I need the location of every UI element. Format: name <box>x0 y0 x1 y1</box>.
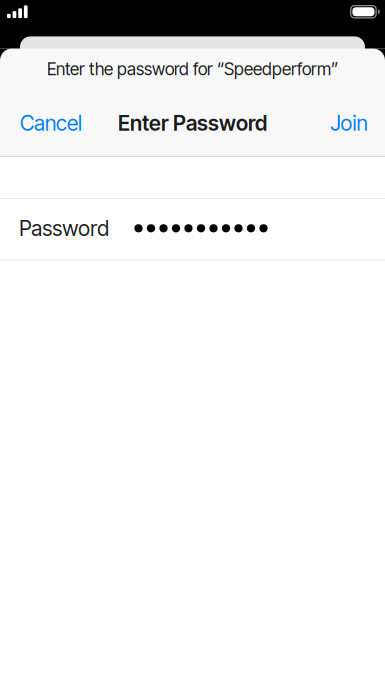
button[interactable]: Join <box>322 97 373 149</box>
button[interactable]: Password <box>0 199 385 260</box>
staticText: Enter the password for “Speedperform” <box>47 59 338 79</box>
button[interactable]: Cancel <box>12 97 90 149</box>
staticText: Password <box>19 216 109 241</box>
staticText: Cancel <box>20 110 82 136</box>
staticText: Enter Password <box>118 110 267 136</box>
staticText: Join <box>330 110 367 136</box>
